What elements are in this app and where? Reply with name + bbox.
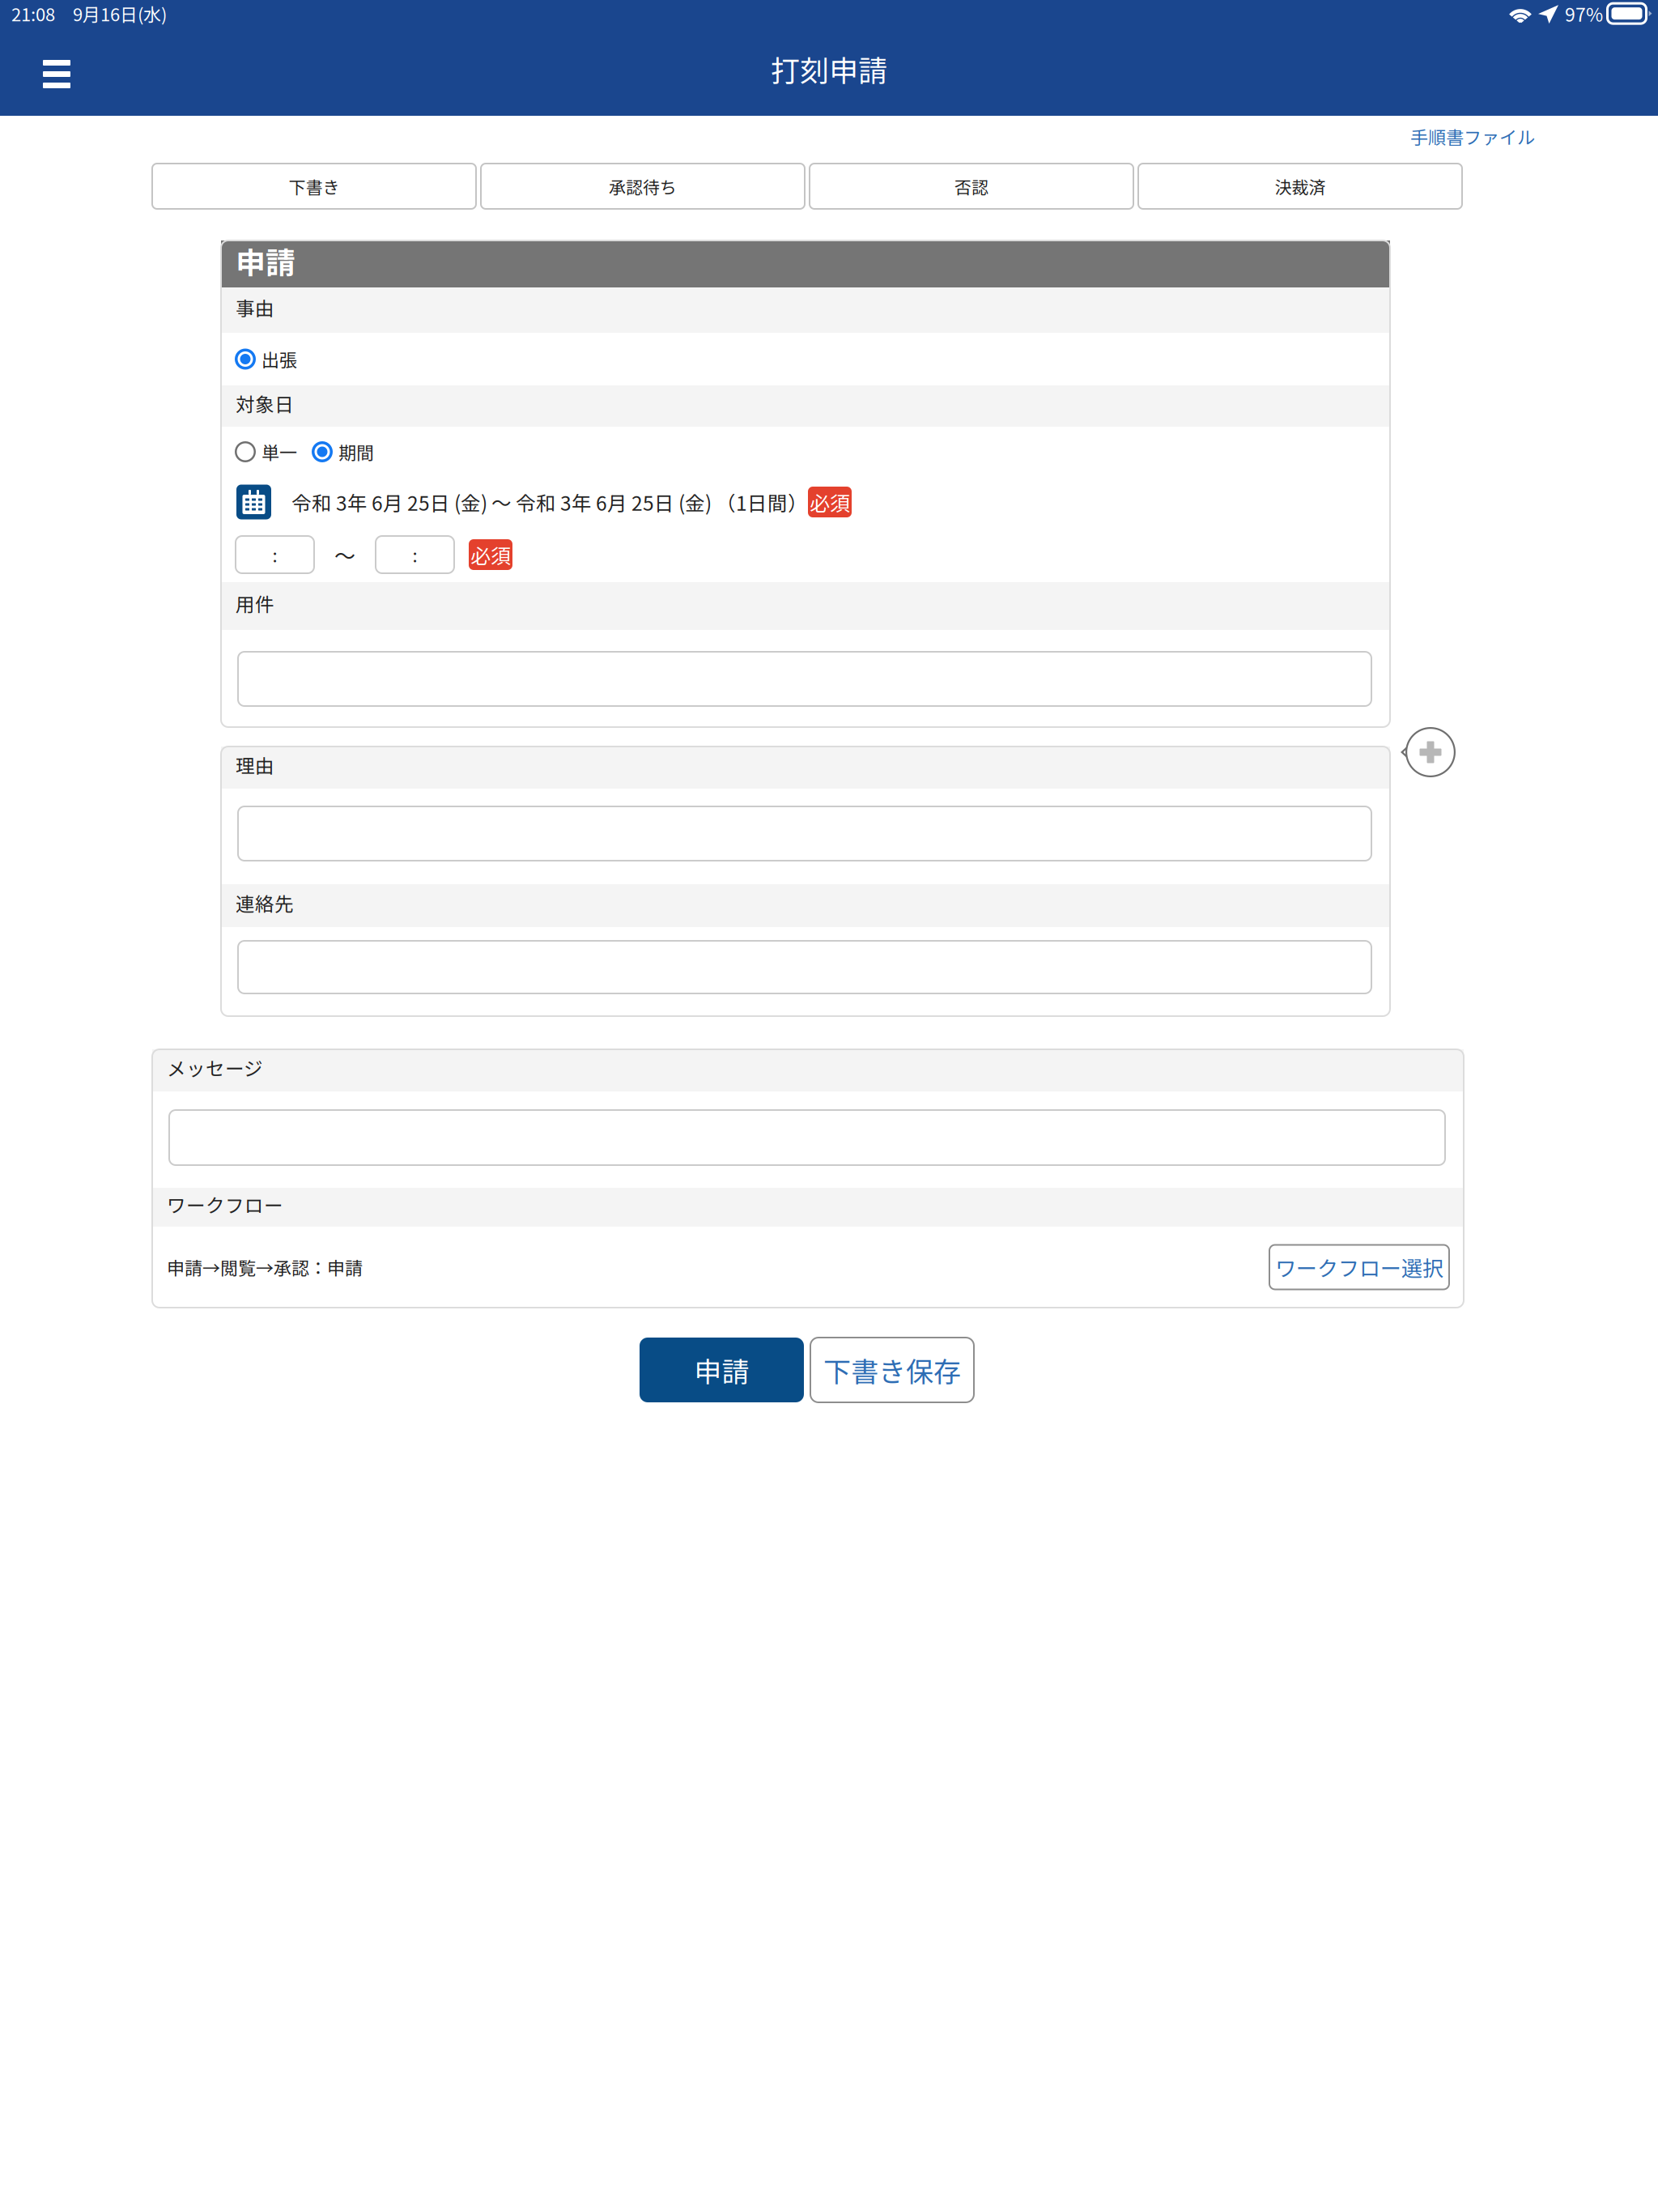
staticText: 97% [1565, 0, 1603, 27]
staticText: 否認 [954, 174, 988, 199]
staticText: 9月16日(水) [73, 1, 167, 26]
button[interactable]: メニュー [0, 27, 113, 116]
staticText: 下書き保存 [823, 1350, 961, 1390]
staticText: 必須 [470, 540, 511, 569]
staticText: 申請→閲覧→承認：申請 [167, 1254, 363, 1280]
staticText: 必須 [810, 487, 850, 517]
button[interactable]: 決裁済 [1138, 164, 1462, 209]
staticText: ワークフロー [167, 1191, 283, 1218]
staticText: 期間 [338, 439, 374, 465]
staticText: 事由 [236, 294, 274, 321]
staticText: 令和 3年 6月 25日 (金) ～ 令和 3年 6月 25日 (金) （1日間… [291, 488, 808, 516]
button[interactable]: 承認待ち [481, 164, 805, 209]
button[interactable]: 下書き保存 [810, 1338, 974, 1402]
staticText: 決裁済 [1275, 174, 1326, 199]
staticText: 単一 [261, 439, 297, 465]
button[interactable]: 否認 [810, 164, 1133, 209]
staticText: 用件 [236, 589, 274, 617]
staticText: 承認待ち [609, 174, 677, 199]
staticText: 対象日 [236, 389, 294, 417]
staticText: 打刻申請 [771, 48, 887, 90]
staticText: 理由 [236, 751, 274, 778]
staticText: 21:08 [11, 1, 55, 26]
button[interactable]: 時刻 [236, 536, 314, 573]
staticText: ～ [334, 539, 355, 570]
staticText: : [412, 542, 417, 568]
staticText: 出張 [261, 346, 297, 372]
button[interactable]: 下書き [152, 164, 476, 209]
staticText: 申請 [694, 1350, 749, 1390]
button[interactable]: ワークフロー選択 [1269, 1245, 1449, 1289]
button[interactable]: 追加 [1401, 727, 1456, 777]
staticText: ワークフロー選択 [1275, 1252, 1443, 1282]
button[interactable]: 時刻 [376, 536, 454, 573]
staticText: 下書き [289, 174, 340, 199]
button[interactable]: 申請 [640, 1338, 804, 1402]
staticText: メッセージ [167, 1054, 263, 1081]
staticText: 手順書ファイル [1410, 124, 1535, 149]
button[interactable]: 手順書ファイル [1410, 124, 1535, 149]
staticText: : [272, 542, 277, 568]
staticText: 連絡先 [236, 889, 294, 917]
staticText: 申請 [236, 239, 295, 282]
